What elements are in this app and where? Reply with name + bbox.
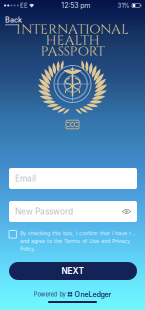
staticText: OneLedger <box>74 290 111 299</box>
button[interactable]: Email <box>9 168 137 189</box>
staticText: NEXT <box>61 266 84 276</box>
button[interactable]: New Password <box>9 201 137 222</box>
staticText: EE <box>20 2 28 9</box>
staticText: Policy. <box>20 246 36 252</box>
staticText: New Password <box>15 206 73 216</box>
staticText: Powered by <box>34 291 66 298</box>
staticText: INTERNATIONAL <box>16 20 129 39</box>
button[interactable]: NEXT <box>9 262 137 280</box>
button[interactable]: Accept terms and conditions <box>9 230 16 238</box>
staticText: By checking this box, I confirm that I h… <box>20 230 137 236</box>
staticText: 31% <box>117 2 129 9</box>
staticText: Email <box>15 173 36 183</box>
staticText: HEALTH <box>45 31 99 50</box>
staticText: Back <box>5 15 22 24</box>
staticText: 12:53 pm <box>61 1 90 10</box>
button[interactable]: Back <box>0 13 27 28</box>
staticText: PASSPORT <box>40 42 104 61</box>
staticText: and agree to the Terms of Use and Privac… <box>20 238 130 244</box>
